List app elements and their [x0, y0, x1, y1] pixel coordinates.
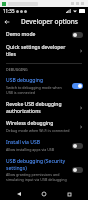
- staticText: Developer options: [21, 17, 78, 26]
- staticText: Install via USB: [6, 139, 40, 146]
- staticText: Demo mode: [6, 31, 36, 38]
- staticText: Revoke USB debugging authorizations: [6, 101, 76, 114]
- staticText: Switch to debugging mode when USB is con…: [6, 85, 68, 95]
- button[interactable]: USB debugging (Security settings): [0, 155, 88, 185]
- button[interactable]: Wireless debugging: [0, 117, 88, 136]
- button[interactable]: Off: [72, 143, 83, 149]
- button[interactable]: Recents: [63, 188, 75, 200]
- staticText: Quick settings developer tiles: [6, 44, 76, 57]
- button[interactable]: USB debugging: [0, 74, 88, 98]
- staticText: DEBUGGING: [6, 67, 28, 72]
- button[interactable]: Back: [13, 188, 25, 200]
- staticText: 11:35: [3, 8, 15, 14]
- staticText: Wireless debugging: [6, 120, 54, 127]
- button[interactable]: Revoke USB debugging authorizations: [0, 98, 88, 117]
- staticText: Debug mode when Wi-Fi is connected: [6, 128, 70, 133]
- button[interactable]: Demo mode: [0, 28, 88, 41]
- button[interactable]: On: [72, 83, 83, 89]
- button[interactable]: Home: [38, 188, 50, 200]
- button[interactable]: Back: [0, 15, 13, 28]
- button[interactable]: Off: [72, 32, 83, 38]
- staticText: USB debugging: [6, 77, 44, 84]
- button[interactable]: Off: [72, 167, 83, 173]
- staticText: Allow installing apps via USB: [6, 147, 55, 152]
- staticText: Allow granting permissions and simulatin…: [6, 172, 68, 182]
- staticText: USB debugging (Security settings): [6, 158, 68, 171]
- button[interactable]: Install via USB: [0, 136, 88, 155]
- button[interactable]: Quick settings developer tiles: [0, 41, 88, 60]
